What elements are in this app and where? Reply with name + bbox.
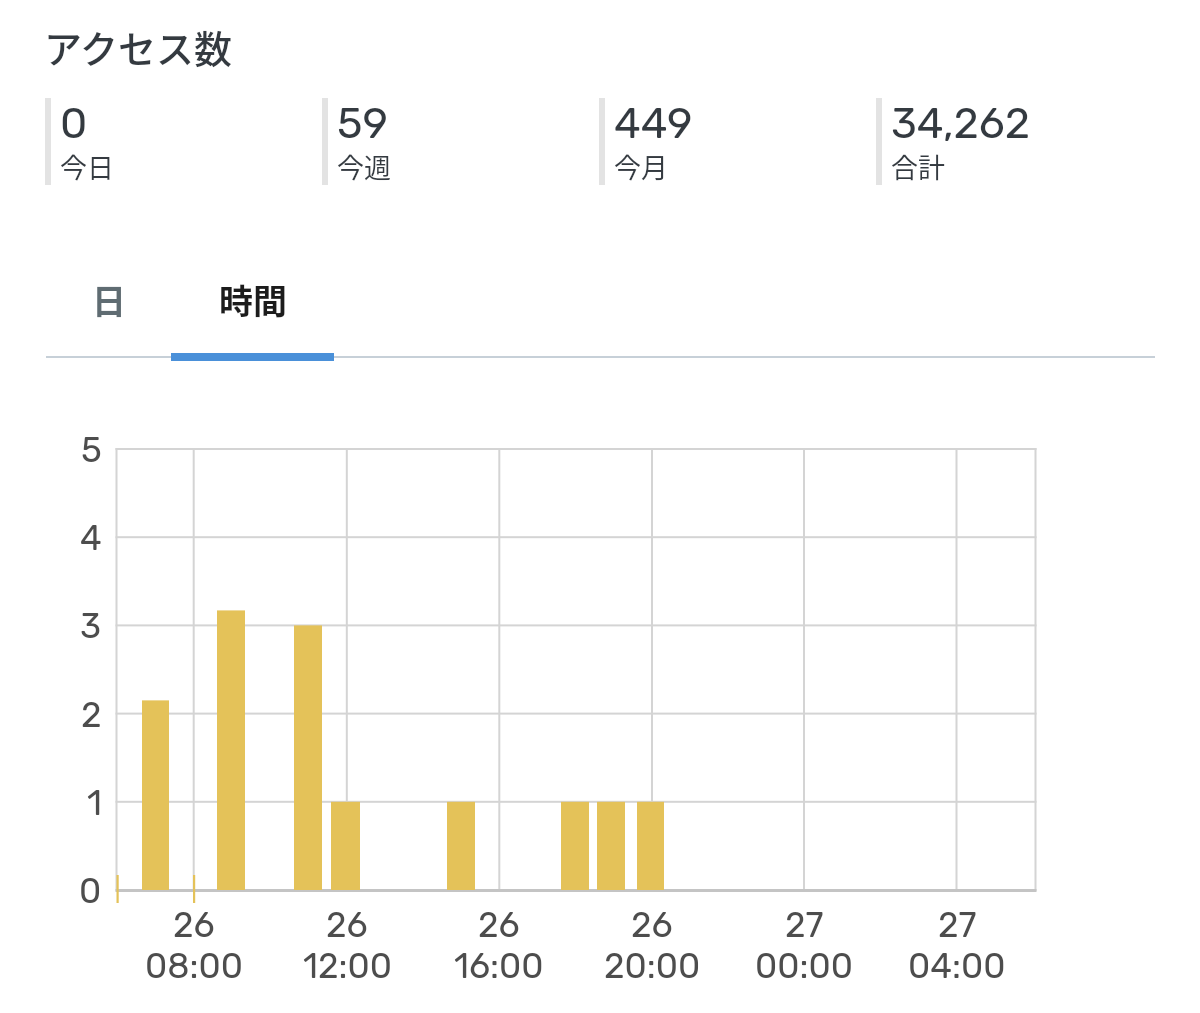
staticText: 2	[81, 694, 102, 735]
staticText: 合計	[891, 147, 945, 186]
staticText: 59	[337, 98, 389, 149]
staticText: 34,262	[891, 98, 1031, 149]
button[interactable]: 日	[46, 251, 171, 347]
staticText: 1	[87, 782, 102, 823]
staticText: 今日	[60, 147, 114, 186]
staticText: 今月	[614, 147, 668, 186]
button[interactable]: 59	[322, 98, 391, 188]
staticText: 08:00	[145, 945, 243, 986]
button[interactable]: 時間	[171, 251, 334, 347]
staticText: 26	[173, 904, 215, 945]
staticText: 16:00	[454, 945, 544, 986]
staticText: 26	[631, 904, 673, 945]
button[interactable]: 449	[599, 98, 693, 188]
staticText: 今週	[337, 147, 391, 186]
staticText: 12:00	[303, 945, 392, 986]
staticText: 4	[80, 517, 102, 558]
staticText: 5	[81, 429, 102, 470]
staticText: アクセス数	[44, 19, 233, 74]
staticText: 0	[79, 870, 102, 911]
staticText: 449	[614, 98, 693, 149]
staticText: 0	[60, 98, 88, 149]
button[interactable]: 0	[45, 98, 114, 188]
staticText: 日	[92, 275, 126, 324]
staticText: 時間	[219, 275, 287, 324]
staticText: 20:00	[604, 945, 701, 986]
staticText: 27	[938, 904, 977, 945]
staticText: 00:00	[755, 945, 853, 986]
button[interactable]: 34,262	[876, 98, 1031, 188]
staticText: 27	[785, 904, 824, 945]
staticText: 26	[478, 904, 520, 945]
staticText: 3	[80, 605, 102, 646]
staticText: 04:00	[908, 945, 1006, 986]
staticText: 26	[326, 904, 368, 945]
